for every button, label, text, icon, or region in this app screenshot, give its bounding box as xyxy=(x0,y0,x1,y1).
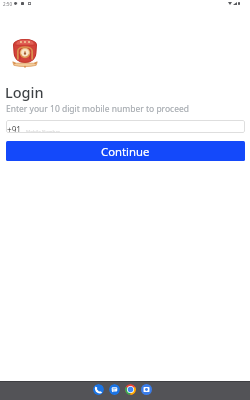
button[interactable]: Phone xyxy=(93,384,104,395)
button[interactable]: Camera xyxy=(141,384,152,395)
staticText: +91 xyxy=(7,124,22,133)
button[interactable]: +91 xyxy=(6,120,245,133)
staticText: Mobile Number xyxy=(26,129,60,133)
staticText: 2:50 xyxy=(3,1,13,7)
button[interactable]: Continue xyxy=(6,141,245,161)
button[interactable]: Messages xyxy=(109,384,120,395)
staticText: Enter your 10 digit mobile number to pro… xyxy=(6,103,189,115)
staticText: Continue xyxy=(101,144,150,159)
staticText: Login xyxy=(5,82,44,102)
button[interactable]: Chrome xyxy=(125,384,136,395)
